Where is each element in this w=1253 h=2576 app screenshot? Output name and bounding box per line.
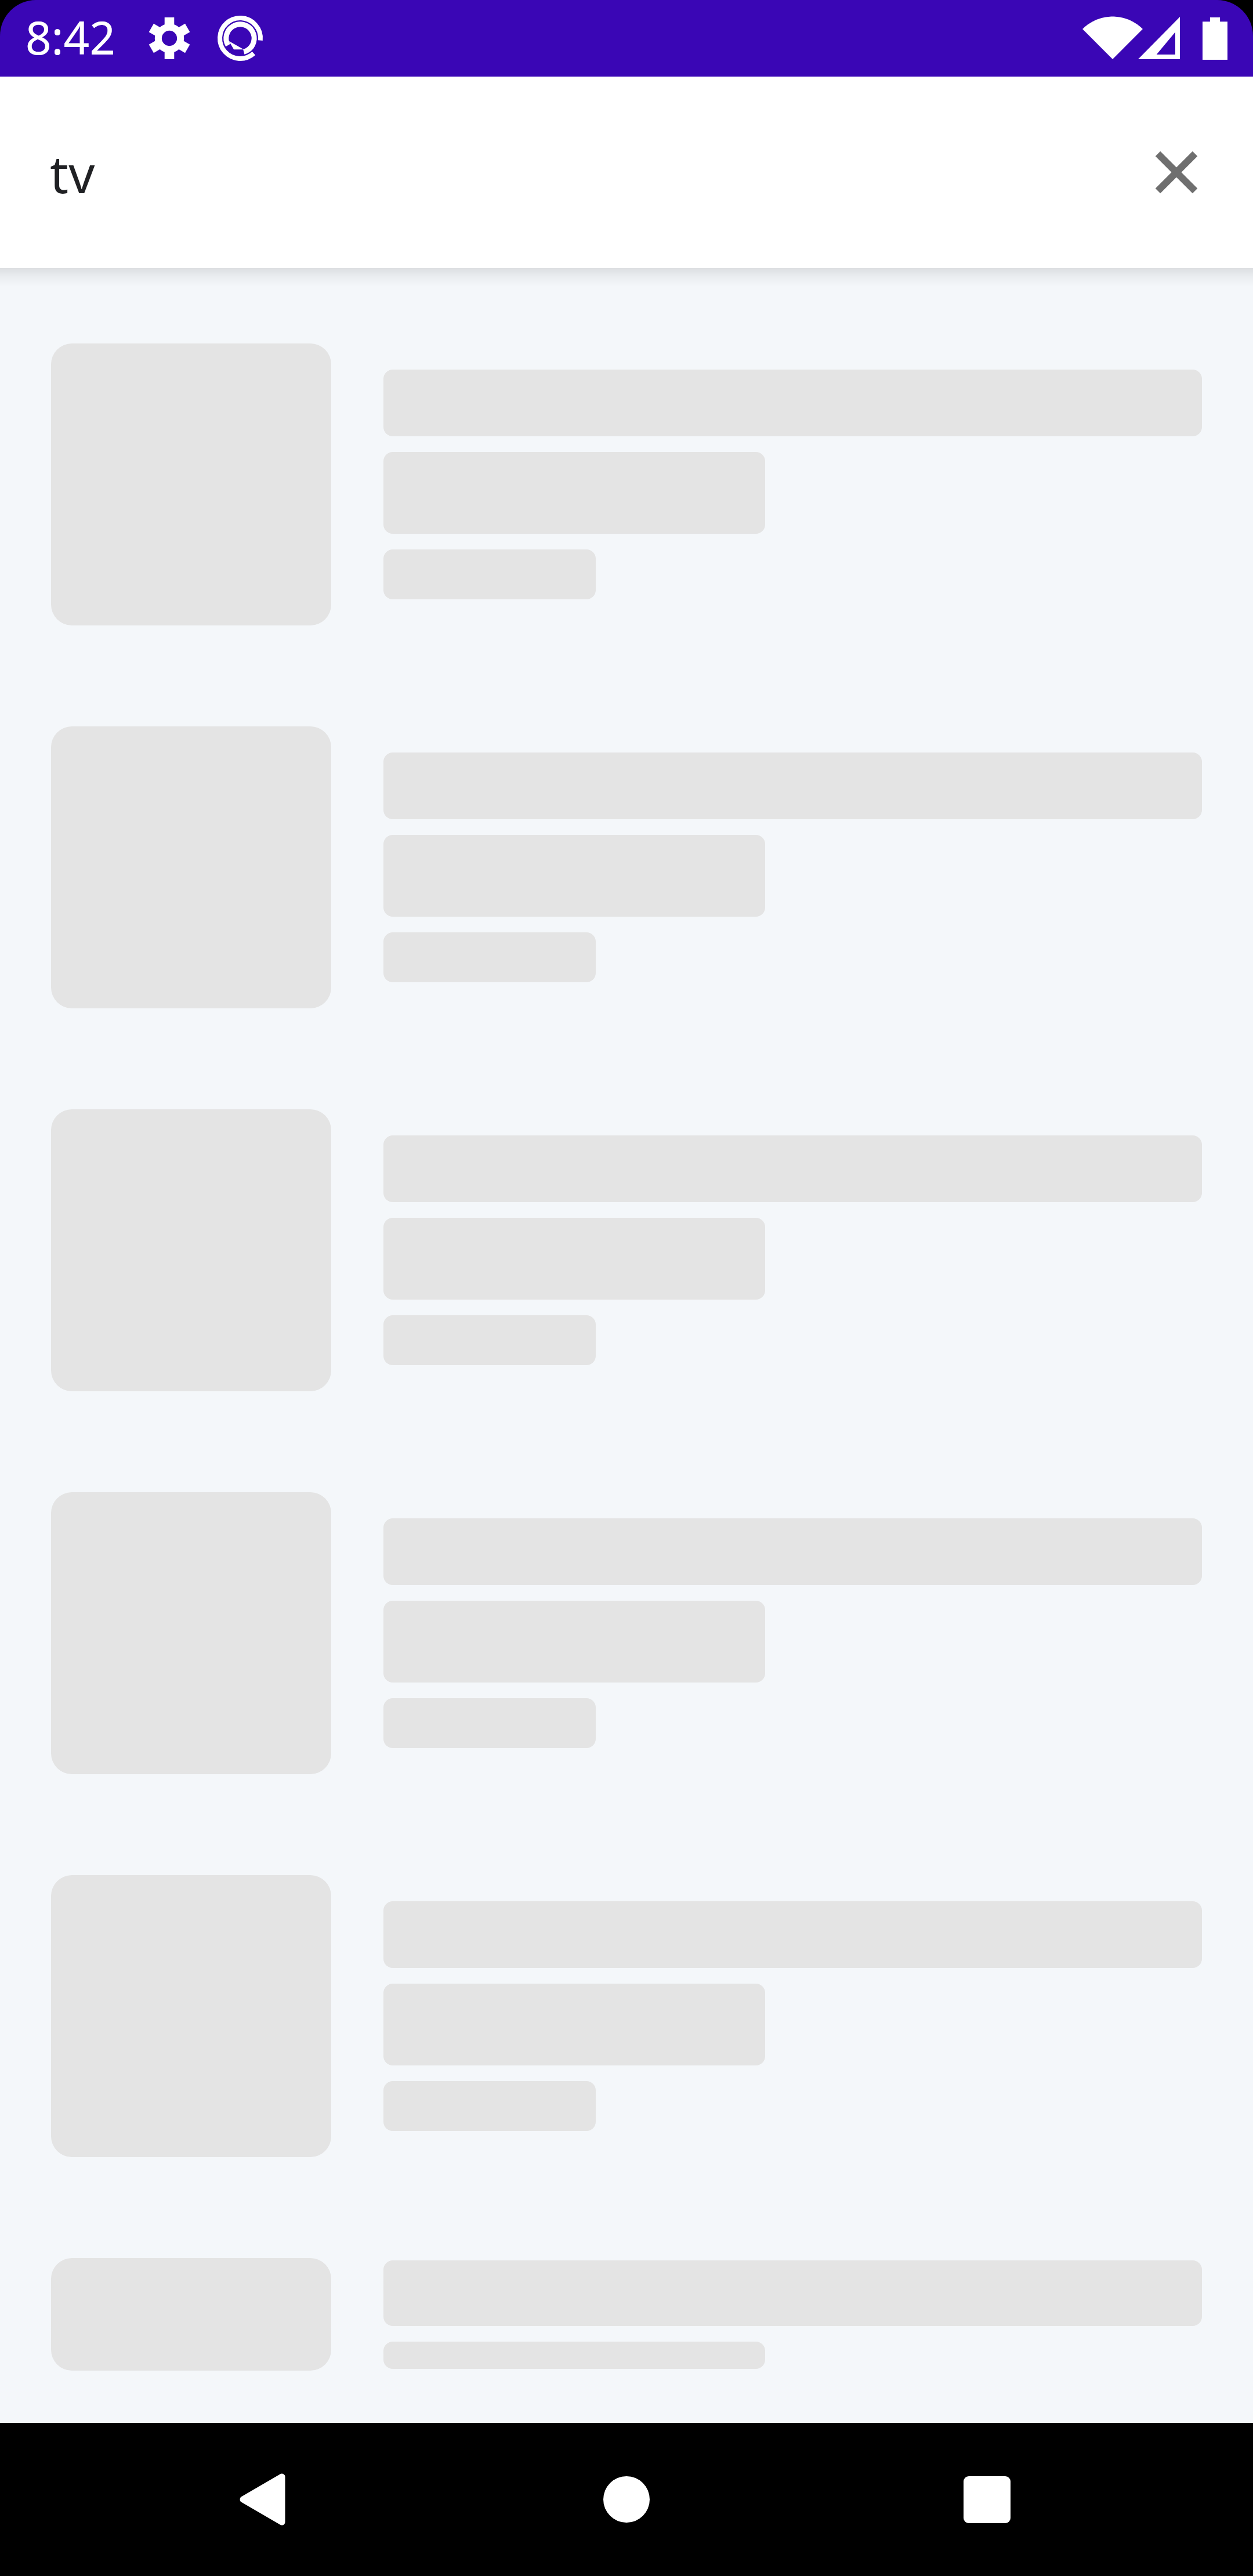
button[interactable]: Back <box>192 2447 331 2552</box>
button[interactable] <box>0 1875 1253 2157</box>
staticText: tv <box>50 138 95 208</box>
button[interactable]: Clear search <box>1120 115 1233 229</box>
button[interactable] <box>0 1109 1253 1391</box>
button[interactable] <box>0 1492 1253 1774</box>
button[interactable]: Home <box>557 2447 696 2552</box>
button[interactable] <box>0 726 1253 1008</box>
button[interactable]: Recent apps <box>917 2447 1056 2552</box>
button[interactable] <box>0 343 1253 625</box>
button[interactable] <box>0 2258 1253 2371</box>
staticText: 8:42 <box>26 6 115 68</box>
